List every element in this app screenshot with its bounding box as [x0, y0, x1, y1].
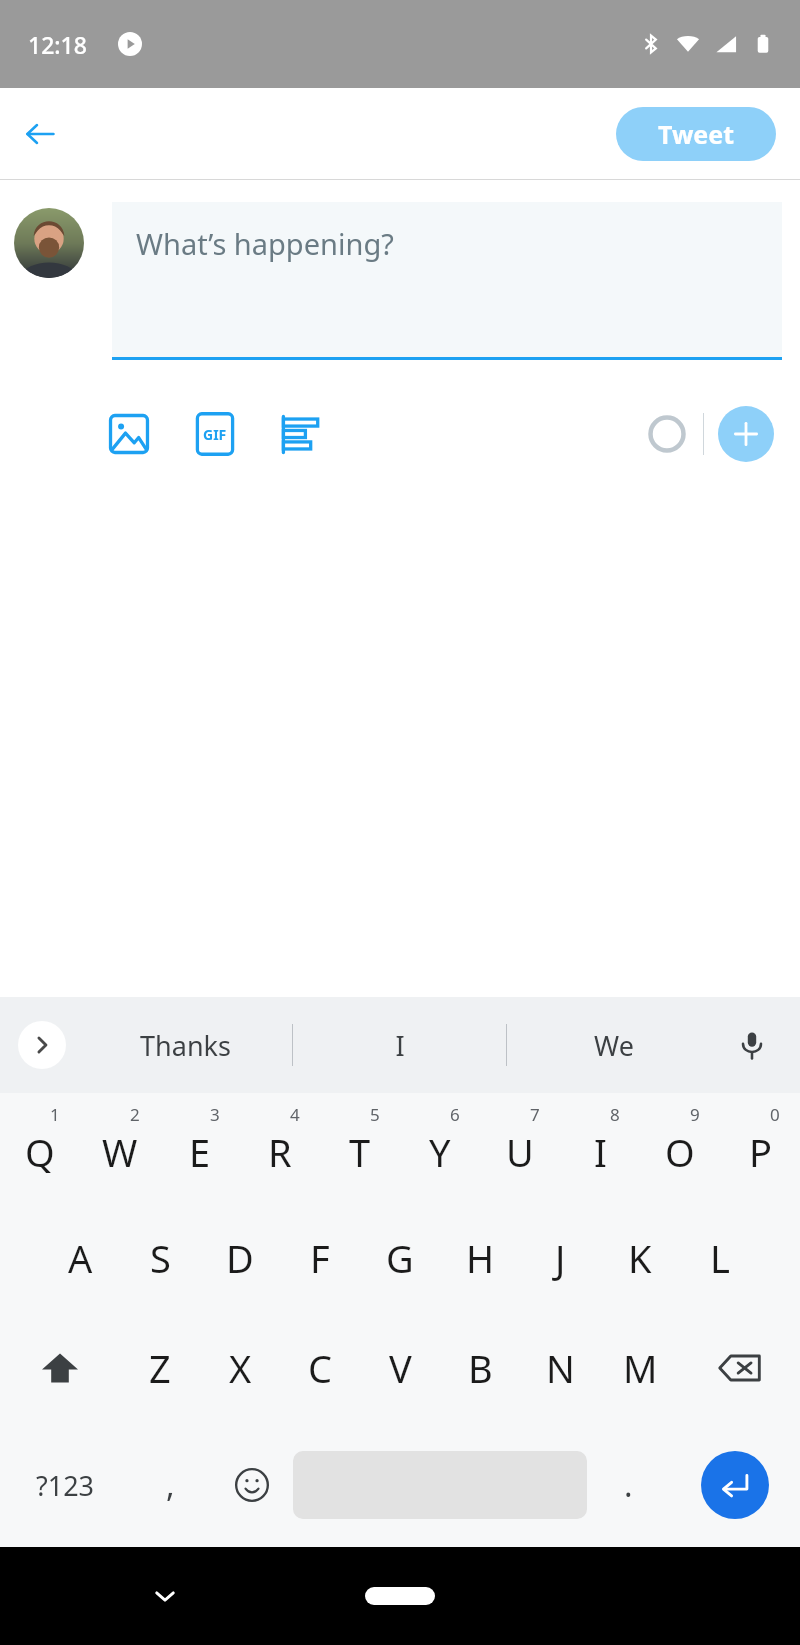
button[interactable]: I [293, 997, 506, 1093]
button[interactable]: 0 [720, 1093, 800, 1203]
button[interactable]: 9 [640, 1093, 720, 1203]
staticText: L [710, 1232, 730, 1284]
staticText: I [594, 1126, 607, 1178]
button[interactable]: Tweet [616, 107, 776, 161]
staticText: H [466, 1232, 495, 1284]
button[interactable]: X [200, 1313, 280, 1423]
button[interactable]: Profile photo [14, 208, 84, 278]
button[interactable]: What’s happening? [112, 202, 782, 357]
button[interactable]: More suggestions [18, 1021, 66, 1069]
staticText: R [268, 1126, 292, 1178]
staticText: ?123 [36, 1467, 95, 1504]
button[interactable]: H [440, 1203, 520, 1313]
staticText: I [395, 1027, 405, 1064]
staticText: 0 [770, 1103, 780, 1126]
button[interactable]: Add poll [272, 405, 330, 463]
staticText: 7 [530, 1103, 540, 1126]
staticText: . [624, 1463, 633, 1507]
staticText: E [189, 1126, 211, 1178]
button[interactable]: Voice input [726, 1019, 778, 1071]
button[interactable]: 8 [560, 1093, 640, 1203]
button[interactable]: D [200, 1203, 280, 1313]
button[interactable]: G [360, 1203, 440, 1313]
staticText: 3 [210, 1103, 220, 1126]
button[interactable]: 5 [320, 1093, 400, 1203]
staticText: Thanks [140, 1027, 231, 1064]
staticText: 5 [370, 1103, 380, 1126]
staticText: X [229, 1342, 252, 1394]
button[interactable]: M [600, 1313, 680, 1423]
staticText: J [555, 1232, 566, 1284]
button[interactable]: We [507, 997, 720, 1093]
button[interactable]: B [440, 1313, 520, 1423]
button[interactable]: Add tweet [718, 406, 774, 462]
staticText: What’s happening? [136, 224, 394, 263]
button[interactable]: 6 [400, 1093, 480, 1203]
staticText: M [623, 1342, 658, 1394]
button[interactable]: J [520, 1203, 600, 1313]
staticText: 6 [450, 1103, 460, 1126]
staticText: S [150, 1232, 171, 1284]
button[interactable]: Home [365, 1587, 435, 1605]
button[interactable]: Thanks [78, 997, 292, 1093]
staticText: Tweet [658, 117, 735, 151]
button[interactable]: C [280, 1313, 360, 1423]
staticText: , [166, 1463, 175, 1507]
staticText: 1 [50, 1103, 60, 1126]
staticText: F [310, 1232, 330, 1284]
staticText: We [594, 1027, 634, 1064]
staticText: W [102, 1126, 138, 1178]
staticText: 2 [130, 1103, 140, 1126]
button[interactable]: 3 [160, 1093, 240, 1203]
button[interactable]: S [120, 1203, 200, 1313]
button[interactable]: Z [120, 1313, 200, 1423]
button[interactable]: 7 [480, 1093, 560, 1203]
button[interactable]: Back [12, 106, 68, 162]
button[interactable]: A [40, 1203, 120, 1313]
button[interactable]: K [600, 1203, 680, 1313]
button[interactable]: Shift [0, 1313, 120, 1423]
staticText: G [386, 1232, 414, 1284]
staticText: Q [25, 1126, 55, 1178]
staticText: 4 [290, 1103, 300, 1126]
staticText: P [749, 1126, 772, 1178]
staticText: K [628, 1232, 652, 1284]
staticText: D [226, 1232, 254, 1284]
staticText: U [506, 1126, 534, 1178]
staticText: V [389, 1342, 412, 1394]
button[interactable]: V [360, 1313, 440, 1423]
button[interactable]: Emoji [211, 1423, 293, 1547]
staticText: 8 [610, 1103, 620, 1126]
staticText: N [546, 1342, 575, 1394]
button[interactable]: Enter [701, 1451, 769, 1519]
button[interactable]: N [520, 1313, 600, 1423]
staticText: T [349, 1126, 371, 1178]
button[interactable]: 2 [80, 1093, 160, 1203]
button[interactable]: Backspace [680, 1313, 800, 1423]
button[interactable]: . [587, 1423, 669, 1547]
button[interactable]: Character count [639, 406, 695, 462]
button[interactable]: , [130, 1423, 211, 1547]
button[interactable]: Add photo [100, 405, 158, 463]
staticText: 9 [690, 1103, 700, 1126]
staticText: A [68, 1232, 93, 1284]
staticText: O [665, 1126, 695, 1178]
staticText: C [308, 1342, 333, 1394]
button[interactable]: Add GIF [186, 405, 244, 463]
button[interactable]: L [680, 1203, 760, 1313]
staticText: Y [429, 1126, 451, 1178]
button[interactable]: F [280, 1203, 360, 1313]
staticText: 12:18 [28, 29, 87, 60]
button[interactable]: 4 [240, 1093, 320, 1203]
button[interactable]: 1 [0, 1093, 80, 1203]
button[interactable]: ?123 [0, 1423, 130, 1547]
staticText: Z [149, 1342, 171, 1394]
button[interactable]: Hide keyboard [140, 1571, 190, 1621]
staticText: B [468, 1342, 493, 1394]
staticText: GIF [203, 425, 227, 444]
